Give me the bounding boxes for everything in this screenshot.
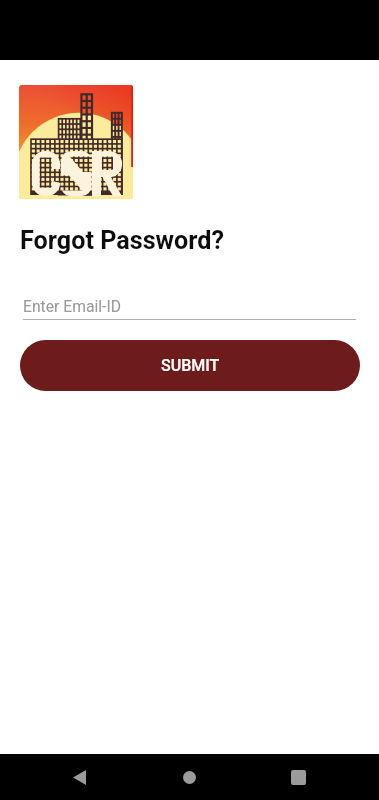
button[interactable]: SUBMIT — [20, 340, 360, 391]
staticText: Enter Email-ID — [23, 297, 121, 315]
staticText: SUBMIT — [161, 356, 220, 375]
staticText: Forgot Password? — [20, 226, 225, 256]
button[interactable]: Recent apps — [267, 754, 330, 800]
button[interactable]: Back — [48, 754, 111, 800]
button[interactable]: Home — [158, 754, 221, 800]
